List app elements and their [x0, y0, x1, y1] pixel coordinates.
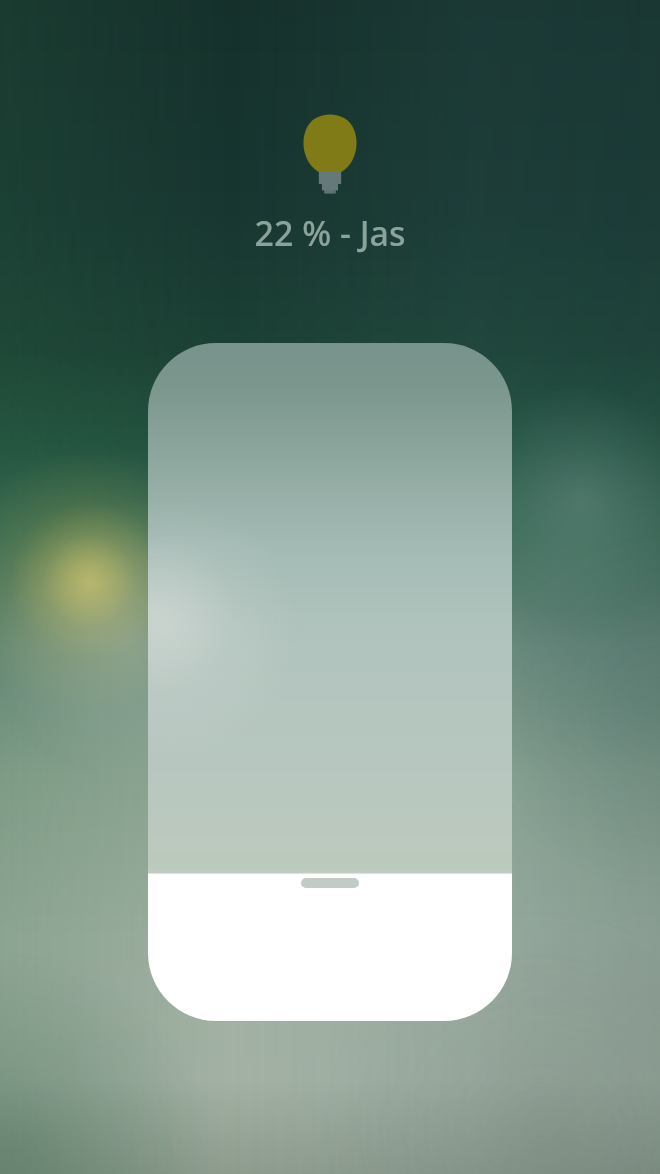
button[interactable] — [148, 343, 512, 1021]
button[interactable]: Light bulb, 22 percent, Jas — [230, 112, 430, 260]
staticText: 22 % - Jas — [254, 210, 406, 256]
